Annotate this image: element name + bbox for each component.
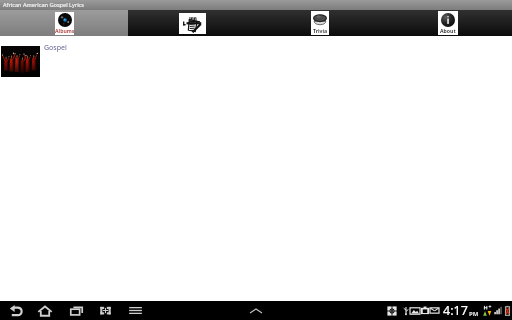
staticText: 4:17 <box>443 302 468 319</box>
staticText: Trivia <box>313 27 328 34</box>
button[interactable]: Albums <box>0 10 128 36</box>
button[interactable]: Back <box>8 301 24 320</box>
staticText: PM <box>469 310 479 318</box>
button[interactable]: Home <box>37 301 53 320</box>
button[interactable]: Screenshot <box>97 301 113 320</box>
staticText: About <box>440 27 456 34</box>
button[interactable]: Show keyboard <box>247 302 265 320</box>
button[interactable]: Gospel <box>0 36 512 81</box>
staticText: Albums <box>55 27 74 34</box>
button[interactable]: About <box>384 10 512 36</box>
staticText: Gospel <box>44 43 67 53</box>
staticText: African American Gospel Lyrics <box>3 1 84 9</box>
button[interactable]: Menu <box>127 301 143 320</box>
button[interactable]: Trivia <box>256 10 384 36</box>
button[interactable]: Recent apps <box>68 301 84 320</box>
button[interactable] <box>128 10 256 36</box>
